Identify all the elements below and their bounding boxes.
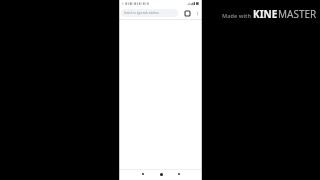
- button[interactable]: Recent apps: [174, 170, 184, 178]
- staticText: Search or type web address: [124, 11, 159, 15]
- button[interactable]: [119, 20, 202, 169]
- other: Wifi, signal and battery: [187, 2, 199, 5]
- button[interactable]: Switch or open tabs: [183, 9, 192, 18]
- staticText: Made with: [222, 12, 251, 19]
- button[interactable]: Home: [156, 170, 166, 178]
- button[interactable]: Search or type web address: [121, 9, 178, 17]
- button[interactable]: More options: [193, 9, 201, 17]
- other: Status information: [122, 2, 146, 5]
- staticText: KINE: [253, 7, 278, 21]
- button[interactable]: Back: [138, 170, 148, 178]
- staticText: MASTER: [278, 7, 317, 21]
